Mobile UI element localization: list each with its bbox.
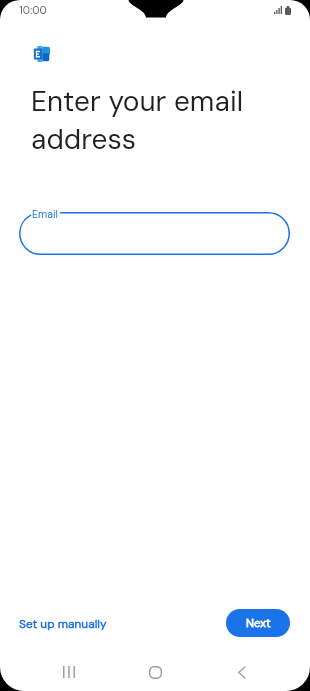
button[interactable]: Set up manually: [13, 612, 113, 635]
button[interactable]: Home: [132, 655, 178, 689]
staticText: 10:00: [19, 3, 47, 17]
staticText: Next: [246, 616, 271, 631]
staticText: Set up manually: [19, 616, 107, 631]
staticText: Email: [32, 208, 58, 222]
button[interactable]: Back: [219, 655, 265, 689]
button[interactable]: Recent apps: [46, 655, 92, 689]
button[interactable]: Next: [226, 609, 290, 637]
staticText: Enter your email address: [31, 83, 243, 158]
